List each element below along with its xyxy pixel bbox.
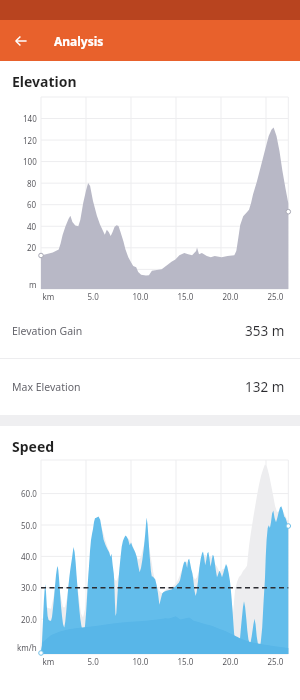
staticText: Max Elevation [12, 380, 81, 394]
staticText: 132 m [245, 378, 285, 396]
button[interactable]: Max Elevation [0, 359, 300, 415]
button[interactable]: Elevation Gain [0, 303, 300, 358]
staticText: Elevation [12, 72, 77, 91]
button[interactable]: Back [0, 20, 41, 61]
staticText: Analysis [54, 33, 104, 49]
staticText: Elevation Gain [12, 324, 83, 338]
staticText: Speed [12, 437, 55, 456]
staticText: 353 m [245, 322, 285, 340]
